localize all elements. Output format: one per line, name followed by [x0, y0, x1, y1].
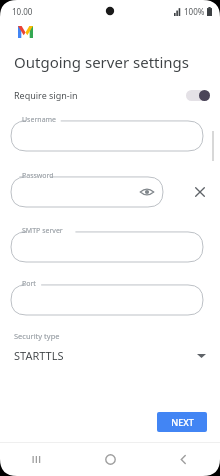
button[interactable]: Require sign-in: [0, 83, 220, 107]
button[interactable]: Port: [11, 279, 203, 315]
button[interactable]: SMTP server: [11, 226, 203, 262]
button[interactable]: Password: [11, 171, 163, 207]
staticText: Outgoing server settings: [14, 52, 190, 72]
button[interactable]: Clear password: [191, 183, 209, 201]
button[interactable]: NEXT: [157, 412, 207, 432]
staticText: Port: [22, 279, 36, 289]
staticText: Password: [22, 171, 54, 181]
staticText: STARTTLS: [14, 348, 64, 363]
staticText: Require sign-in: [14, 89, 78, 101]
button[interactable]: Show password: [139, 184, 155, 200]
staticText: SMTP server: [22, 226, 63, 236]
staticText: Security type: [14, 331, 60, 341]
button[interactable]: Home: [74, 443, 147, 476]
staticText: 100%: [184, 6, 205, 17]
button[interactable]: Back: [147, 443, 220, 476]
button[interactable]: Security type: [0, 331, 220, 363]
button[interactable]: Recents: [0, 443, 74, 476]
staticText: Username: [22, 115, 57, 125]
button[interactable]: Username: [11, 115, 203, 151]
staticText: 10.00: [12, 6, 33, 17]
staticText: NEXT: [171, 416, 194, 428]
